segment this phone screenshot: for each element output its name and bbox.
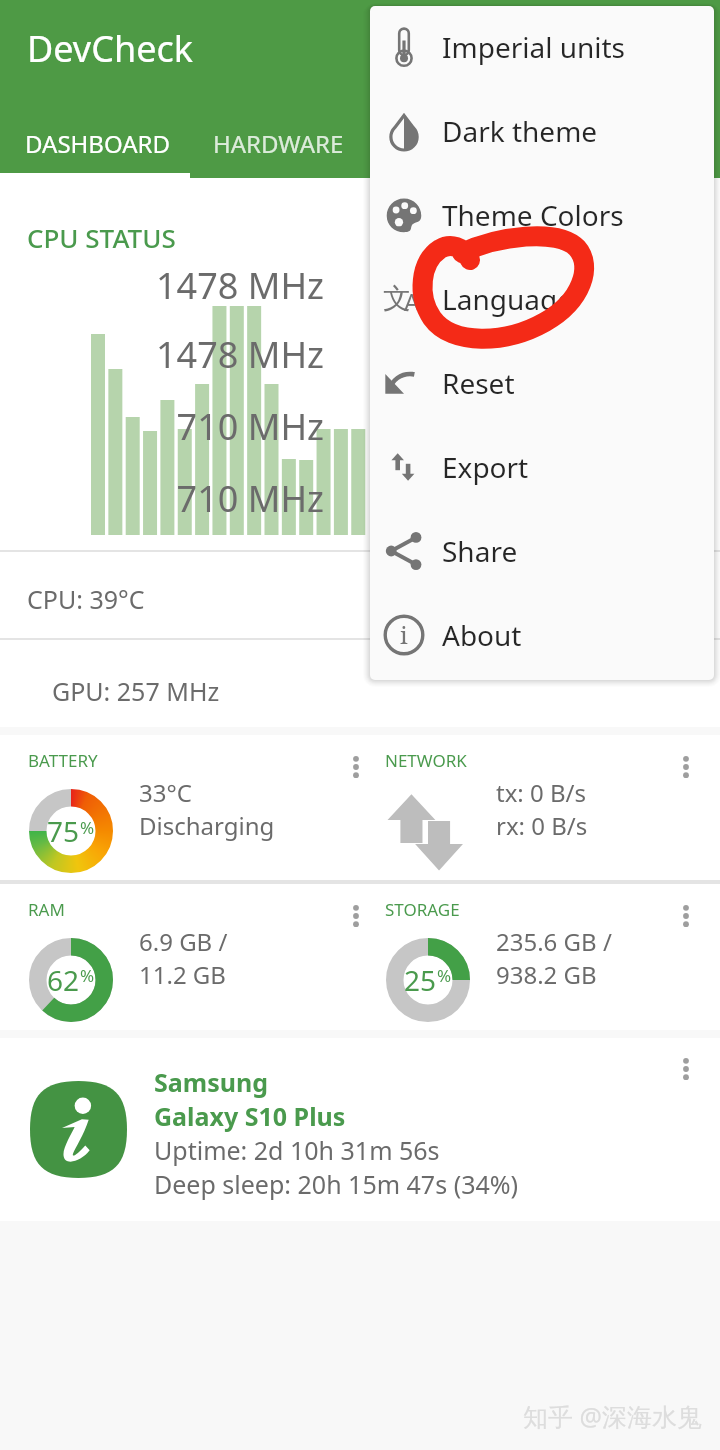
staticText: 文 xyxy=(383,281,411,316)
button[interactable]: More options xyxy=(664,1047,708,1091)
staticText: rx: 0 B/s xyxy=(496,809,588,842)
button[interactable]: 文 xyxy=(370,257,714,341)
staticText: RAM xyxy=(28,898,65,921)
staticText: GPU: 257 MHz xyxy=(52,674,220,708)
button[interactable]: Export xyxy=(370,425,714,509)
staticText: % xyxy=(80,964,95,987)
staticText: Share xyxy=(442,532,518,570)
staticText: 知乎 @深海水鬼 xyxy=(523,1399,702,1433)
button[interactable]: More options xyxy=(664,894,708,938)
staticText: 75 xyxy=(47,812,80,850)
button[interactable]: DASHBOARD xyxy=(0,116,194,178)
button[interactable]: More options xyxy=(334,745,378,789)
button[interactable]: Imperial units xyxy=(370,6,714,89)
staticText: DevCheck xyxy=(27,24,193,73)
button[interactable]: CPU: 39°C xyxy=(0,552,720,638)
staticText: 938.2 GB xyxy=(496,958,597,991)
staticText: 1478 MHz xyxy=(0,330,324,379)
staticText: 11.2 GB xyxy=(139,958,226,991)
staticText: 25 xyxy=(404,961,437,999)
staticText: Reset xyxy=(442,364,515,402)
button[interactable]: Theme Colors xyxy=(370,173,714,257)
button[interactable]: RAM xyxy=(0,884,360,1030)
button[interactable]: More options xyxy=(664,745,708,789)
staticText: 710 MHz xyxy=(0,402,324,451)
button[interactable]: Samsung xyxy=(0,1038,720,1221)
staticText: i xyxy=(400,618,408,651)
staticText: About xyxy=(442,616,522,654)
button[interactable]: HARDWARE xyxy=(194,116,362,178)
staticText: Deep sleep: 20h 15m 47s (34%) xyxy=(154,1167,519,1201)
staticText: NETWORK xyxy=(385,749,467,772)
staticText: % xyxy=(80,816,95,839)
staticText: CPU STATUS xyxy=(27,220,176,255)
staticText: Galaxy S10 Plus xyxy=(154,1099,346,1133)
staticText: 235.6 GB / xyxy=(496,925,612,958)
button[interactable]: STORAGE xyxy=(360,884,720,1030)
button[interactable]: NETWORK xyxy=(360,735,720,880)
staticText: 1478 MHz xyxy=(0,261,324,310)
staticText: % xyxy=(437,964,452,987)
button[interactable]: More options xyxy=(334,894,378,938)
staticText: CPU: 39°C xyxy=(27,582,145,616)
staticText: Discharging xyxy=(139,809,275,842)
staticText: Dark theme xyxy=(442,112,598,150)
staticText: Theme Colors xyxy=(442,196,624,234)
button[interactable]: i xyxy=(370,593,714,677)
button[interactable]: GPU: 257 MHz xyxy=(0,640,720,727)
staticText: DASHBOARD xyxy=(25,127,170,160)
button[interactable]: Reset xyxy=(370,341,714,425)
button[interactable]: Share xyxy=(370,509,714,593)
staticText: Uptime: 2d 10h 31m 56s xyxy=(154,1133,440,1167)
staticText: BATTERY xyxy=(28,749,98,772)
staticText: Imperial units xyxy=(442,28,626,66)
button[interactable]: Dark theme xyxy=(370,89,714,173)
staticText: Language xyxy=(442,280,573,318)
staticText: tx: 0 B/s xyxy=(496,776,587,809)
staticText: 33°C xyxy=(139,776,192,809)
staticText: 6.9 GB / xyxy=(139,925,228,958)
staticText: A xyxy=(404,285,420,318)
staticText: Samsung xyxy=(154,1065,268,1099)
staticText: STORAGE xyxy=(385,898,460,921)
staticText: Export xyxy=(442,448,529,486)
button[interactable]: BATTERY xyxy=(0,735,360,880)
staticText: 710 MHz xyxy=(0,474,324,523)
staticText: HARDWARE xyxy=(213,127,344,160)
staticText: 62 xyxy=(47,961,80,999)
